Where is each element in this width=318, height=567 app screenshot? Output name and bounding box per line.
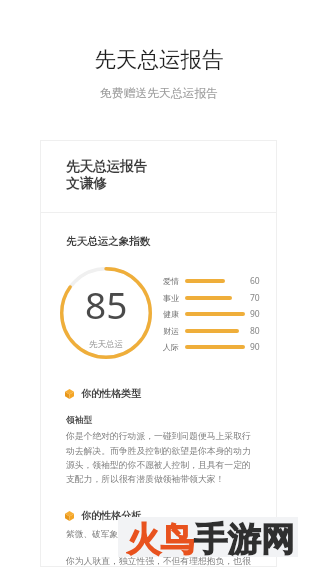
staticText: 免费赠送先天总运报告: [0, 86, 318, 101]
staticText: 人际: [163, 342, 185, 352]
staticText: 火鸟: [127, 519, 194, 561]
staticText: 紫微、破军象: [66, 529, 119, 540]
staticText: 70: [250, 292, 266, 304]
staticText: 60: [250, 275, 266, 287]
staticText: 你的性格分析: [81, 509, 141, 522]
staticText: 文谦修: [66, 175, 107, 192]
staticText: 手游网: [194, 519, 295, 561]
staticText: 90: [250, 308, 266, 320]
staticText: 80: [250, 325, 266, 337]
staticText: 财运: [163, 326, 185, 336]
staticText: 你是个绝对的行动派，一碰到问题便马上采取行动去解决。而争胜及控制的欲望是你本身的…: [66, 431, 254, 484]
staticText: 事业: [163, 293, 185, 303]
staticText: 健康: [163, 309, 185, 319]
staticText: 先天总运之象指数: [66, 235, 150, 248]
staticText: 你的性格类型: [81, 387, 141, 400]
staticText: 领袖型: [66, 415, 93, 426]
staticText: 先天总运报告: [0, 46, 318, 73]
staticText: 85: [85, 279, 128, 329]
staticText: 爱情: [163, 276, 185, 286]
staticText: 先天总运: [89, 339, 123, 350]
staticText: 90: [250, 341, 266, 353]
staticText: 你为人耿直，独立性强，不但有理想抱负，也很: [66, 556, 254, 567]
staticText: 先天总运报告: [66, 158, 147, 175]
